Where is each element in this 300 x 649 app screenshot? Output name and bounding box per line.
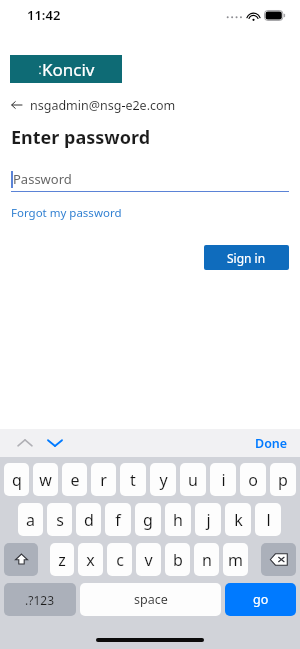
button[interactable]: space xyxy=(80,583,221,616)
button[interactable]: Password xyxy=(11,166,289,192)
staticText: go xyxy=(253,591,269,608)
staticText: Konciv xyxy=(42,58,95,81)
staticText: n xyxy=(202,549,212,571)
button[interactable]: n xyxy=(194,543,219,576)
button[interactable]: e xyxy=(62,463,87,496)
staticText: g xyxy=(143,509,153,531)
button[interactable]: go xyxy=(225,583,296,616)
button[interactable]: b xyxy=(165,543,190,576)
staticText: p xyxy=(278,469,288,491)
staticText: space xyxy=(134,591,168,608)
button[interactable]: Forgot my password xyxy=(11,205,122,221)
staticText: d xyxy=(84,509,94,531)
button[interactable]: m xyxy=(223,543,248,576)
button[interactable]: d xyxy=(76,503,101,536)
staticText: j xyxy=(206,509,211,531)
button[interactable]: a xyxy=(18,503,43,536)
staticText: r xyxy=(100,469,107,491)
button[interactable]: Sign in xyxy=(204,245,289,270)
button[interactable]: Konciv xyxy=(10,55,122,83)
button[interactable]: .?123 xyxy=(4,583,76,616)
staticText: q xyxy=(12,469,22,491)
staticText: 11:42 xyxy=(27,6,61,24)
button[interactable]: t xyxy=(120,463,146,496)
staticText: z xyxy=(58,549,66,571)
staticText: Enter password xyxy=(11,125,151,150)
staticText: Done xyxy=(255,435,288,452)
button[interactable]: x xyxy=(78,543,103,576)
button[interactable]: Next field xyxy=(44,432,66,454)
button[interactable]: y xyxy=(150,463,176,496)
button[interactable]: q xyxy=(4,463,29,496)
button[interactable]: Back xyxy=(11,95,300,115)
staticText: nsgadmin@nsg-e2e.com xyxy=(30,97,176,114)
staticText: t xyxy=(130,469,136,491)
button[interactable]: s xyxy=(47,503,72,536)
button[interactable]: u xyxy=(180,463,206,496)
staticText: .?123 xyxy=(25,592,55,608)
staticText: b xyxy=(173,549,183,571)
staticText: w xyxy=(39,469,52,491)
button[interactable]: Shift xyxy=(4,543,38,576)
other: Back xyxy=(11,99,23,111)
button[interactable]: v xyxy=(136,543,161,576)
button[interactable]: r xyxy=(91,463,116,496)
staticText: s xyxy=(56,509,64,531)
staticText: k xyxy=(234,509,243,531)
button[interactable]: h xyxy=(165,503,191,536)
button[interactable]: c xyxy=(107,543,132,576)
button[interactable]: p xyxy=(270,463,296,496)
staticText: Sign in xyxy=(227,250,266,266)
staticText: f xyxy=(115,509,121,531)
staticText: c xyxy=(116,549,124,571)
button[interactable]: k xyxy=(225,503,251,536)
staticText: y xyxy=(159,469,168,491)
staticText: a xyxy=(26,509,35,531)
staticText: h xyxy=(173,509,183,531)
staticText: l xyxy=(266,509,271,531)
button[interactable]: i xyxy=(210,463,236,496)
button[interactable]: Done xyxy=(255,435,288,452)
staticText: Password xyxy=(13,170,72,188)
staticText: i xyxy=(221,469,226,491)
button[interactable]: l xyxy=(255,503,281,536)
button[interactable]: z xyxy=(50,543,74,576)
button[interactable]: Previous field xyxy=(14,432,36,454)
button[interactable]: o xyxy=(240,463,266,496)
staticText: u xyxy=(188,469,198,491)
staticText: e xyxy=(70,469,80,491)
staticText: x xyxy=(86,549,95,571)
staticText: m xyxy=(228,549,243,571)
button[interactable]: Backspace xyxy=(261,543,296,576)
button[interactable]: w xyxy=(33,463,58,496)
button[interactable]: f xyxy=(105,503,131,536)
staticText: o xyxy=(248,469,258,491)
button[interactable]: g xyxy=(135,503,161,536)
staticText: v xyxy=(144,549,153,571)
button[interactable]: j xyxy=(195,503,221,536)
